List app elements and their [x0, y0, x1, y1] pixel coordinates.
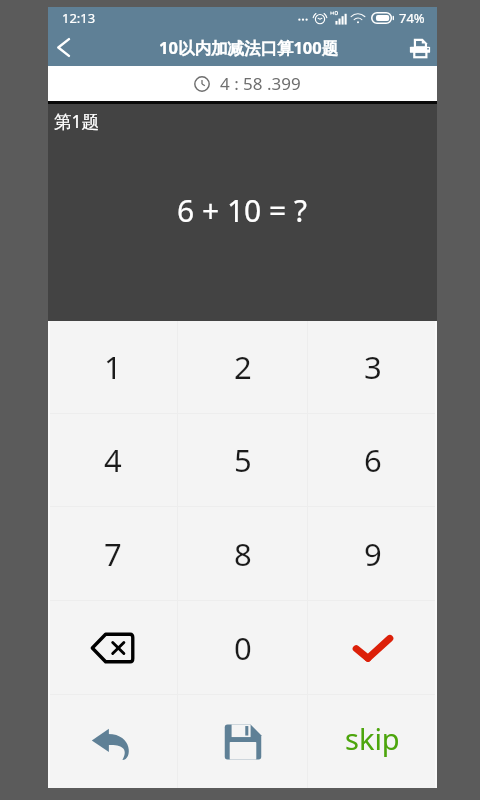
button[interactable]: 5	[178, 414, 307, 506]
staticText: 7	[104, 533, 122, 575]
staticText: 4 : 58 .399	[220, 72, 301, 95]
button[interactable]: 4	[48, 414, 177, 506]
button[interactable]: 7	[48, 507, 177, 600]
button[interactable]: Print	[402, 29, 437, 66]
button[interactable]: skip	[308, 695, 437, 788]
button[interactable]: 1	[48, 321, 177, 413]
staticText: 12:13	[62, 9, 96, 27]
staticText: 0	[234, 627, 252, 669]
button[interactable]: 3	[308, 321, 437, 413]
button[interactable]: Backspace	[48, 601, 177, 694]
staticText: 6	[364, 439, 382, 481]
button[interactable]: Back	[48, 29, 78, 66]
staticText: 8	[234, 533, 252, 575]
button[interactable]: 6	[308, 414, 437, 506]
staticText: 4	[104, 439, 122, 481]
staticText: 3	[364, 346, 382, 388]
button[interactable]: Confirm	[308, 601, 437, 694]
button[interactable]: 8	[178, 507, 307, 600]
button[interactable]: 9	[308, 507, 437, 600]
staticText: 9	[364, 533, 382, 575]
staticText: 74%	[399, 9, 425, 27]
staticText: 2	[234, 346, 252, 388]
staticText: 6 + 10 = ?	[177, 190, 308, 231]
button[interactable]: Save	[178, 695, 307, 788]
staticText: 10以内加减法口算100题	[159, 36, 339, 59]
button[interactable]: 0	[178, 601, 307, 694]
staticText: 1	[104, 346, 122, 388]
staticText: 5	[234, 439, 252, 481]
button[interactable]: Undo	[48, 695, 177, 788]
staticText: 第1题	[54, 109, 100, 133]
staticText: skip	[345, 719, 400, 758]
button[interactable]: 2	[178, 321, 307, 413]
